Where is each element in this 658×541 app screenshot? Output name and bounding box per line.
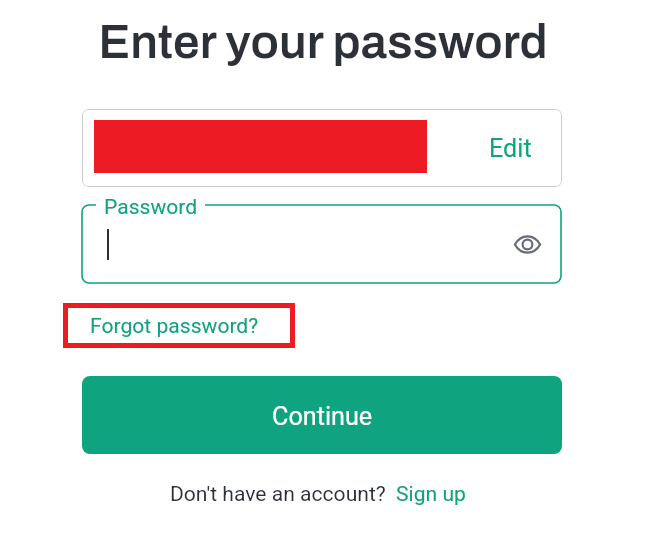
button[interactable]: Edit	[82, 109, 562, 187]
button[interactable]: Forgot password?	[63, 303, 295, 348]
staticText: Sign up	[396, 481, 466, 506]
button[interactable]: Show password	[505, 222, 549, 266]
staticText: Don't have an account?	[170, 481, 386, 506]
button[interactable]: Continue	[82, 376, 562, 454]
staticText: Enter your password	[0, 16, 652, 68]
button[interactable]: Password	[82, 205, 561, 283]
staticText: Edit	[489, 134, 532, 164]
button[interactable]: Sign up	[396, 481, 466, 506]
staticText: Continue	[272, 402, 373, 432]
staticText: Forgot password?	[90, 313, 259, 338]
staticText: Password	[104, 194, 198, 219]
